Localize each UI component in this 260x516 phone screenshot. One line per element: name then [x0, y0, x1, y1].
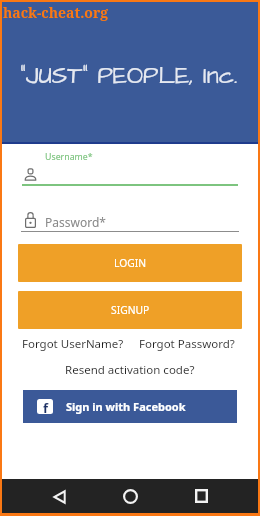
staticText: Forgot Password? — [139, 336, 235, 352]
button[interactable]: LOGIN — [18, 244, 242, 282]
staticText: Username* — [45, 151, 93, 163]
button[interactable]: f — [23, 390, 237, 423]
button[interactable]: SIGNUP — [18, 291, 242, 329]
staticText: f — [43, 399, 49, 414]
staticText: Resend activation code? — [65, 362, 195, 378]
staticText: Forgot UserName? — [22, 336, 124, 352]
button[interactable]: Resend activation code? — [62, 360, 198, 380]
staticText: hack-cheat.org — [3, 3, 109, 22]
button[interactable]: Forgot UserName? — [20, 334, 126, 354]
staticText: "JUST" PEOPLE, Inc. — [20, 59, 238, 92]
staticText: LOGIN — [114, 256, 147, 270]
button[interactable]: Recent apps — [184, 479, 218, 513]
button[interactable]: Home — [113, 479, 147, 513]
button[interactable]: Back — [42, 479, 76, 513]
staticText: Password* — [45, 214, 106, 230]
staticText: Sign in with Facebook — [66, 399, 186, 414]
staticText: SIGNUP — [111, 303, 150, 317]
button[interactable]: Forgot Password? — [137, 334, 237, 354]
